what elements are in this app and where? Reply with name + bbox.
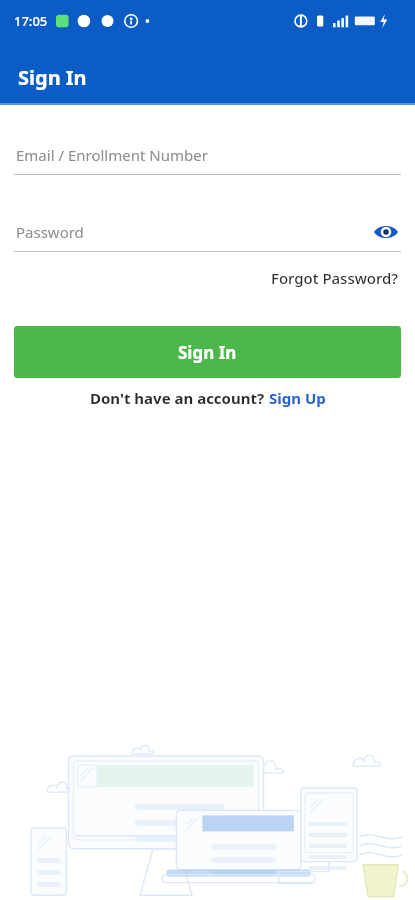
staticText: Sign In [178,341,237,364]
staticText: Password [16,222,84,242]
button[interactable]: Email / Enrollment Number [14,145,401,175]
staticText: 17:05 [14,12,48,30]
button[interactable]: Password [14,217,401,252]
staticText: Email / Enrollment Number [16,145,208,165]
button[interactable]: Show password [371,217,401,247]
staticText: Sign In [18,64,87,91]
staticText: Don't have an account? [90,388,269,408]
button[interactable]: Forgot Password? [269,266,401,290]
button[interactable]: Sign Up [269,388,326,408]
button[interactable]: Sign In [14,326,401,378]
